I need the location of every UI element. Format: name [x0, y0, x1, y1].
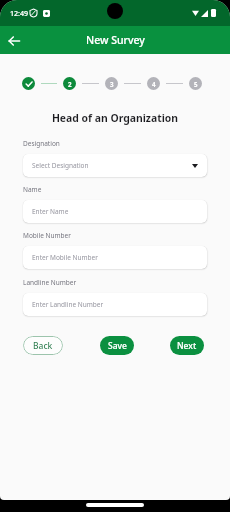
button[interactable] [22, 77, 35, 90]
staticText: Back [33, 340, 53, 352]
button[interactable]: 5 [189, 77, 202, 90]
staticText: Head of an Organization [0, 111, 230, 125]
button[interactable]: Enter Name [23, 200, 207, 223]
staticText: 3 [110, 80, 114, 88]
button[interactable]: Enter Landline Number [23, 293, 207, 316]
button[interactable]: 4 [147, 77, 160, 90]
staticText: 2 [68, 80, 72, 88]
staticText: Landline Number [23, 278, 77, 287]
staticText: Select Designation [32, 161, 89, 170]
staticText: Mobile Number [23, 231, 71, 240]
button[interactable]: 2 [63, 77, 76, 90]
staticText: New Survey [86, 33, 145, 47]
staticText: Designation [23, 139, 60, 148]
button[interactable]: Enter Mobile Number [23, 246, 207, 269]
button[interactable]: Back [23, 336, 63, 355]
staticText: Next [177, 340, 197, 352]
staticText: Enter Landline Number [32, 300, 104, 309]
staticText: 4 [152, 80, 156, 88]
button[interactable]: 3 [105, 77, 118, 90]
staticText: 12:49 [10, 8, 29, 18]
button[interactable]: Save [100, 336, 134, 355]
staticText: Save [108, 340, 127, 352]
staticText: Enter Mobile Number [32, 253, 98, 262]
button[interactable]: Select Designation [23, 154, 207, 177]
button[interactable]: Next [170, 336, 204, 355]
staticText: Enter Name [32, 207, 69, 216]
staticText: Name [23, 185, 42, 194]
staticText: 5 [194, 80, 198, 88]
button[interactable]: Back [2, 28, 26, 52]
